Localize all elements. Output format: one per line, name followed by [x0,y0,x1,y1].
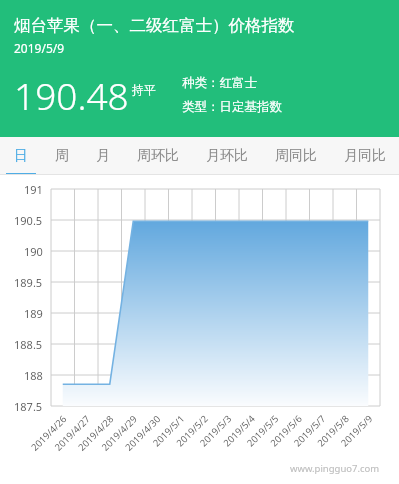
button[interactable]: 月同比 [330,137,399,175]
staticText: 类型：日定基指数 [182,99,282,115]
button[interactable]: 周 [41,137,82,175]
button[interactable]: 周环比 [123,137,192,175]
staticText: 月同比 [344,147,386,165]
staticText: 月环比 [206,147,248,165]
staticText: 周同比 [275,147,317,165]
staticText: 周环比 [137,147,179,165]
staticText: 月 [96,147,110,165]
staticText: 持平 [132,82,156,97]
staticText: 日 [14,147,28,165]
staticText: 种类：红富士 [182,75,257,91]
staticText: 烟台苹果（一、二级红富士）价格指数 [14,15,295,36]
staticText: 周 [55,147,69,165]
button[interactable]: 周同比 [261,137,330,175]
button[interactable]: 月环比 [192,137,261,175]
staticText: 2019/5/9 [14,40,65,56]
button[interactable]: 月 [82,137,123,175]
staticText: 190.48 [14,70,129,120]
button[interactable]: 日 [0,137,41,175]
